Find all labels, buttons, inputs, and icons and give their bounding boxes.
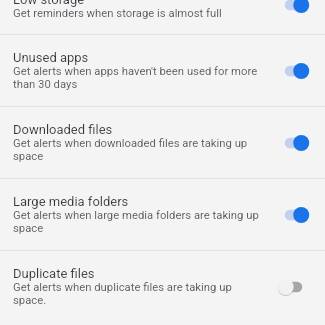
staticText: Get alerts when apps haven't been used f… (13, 65, 260, 91)
button[interactable]: Large media folders (0, 179, 325, 250)
button[interactable]: Unused apps (0, 35, 325, 106)
button[interactable]: Low storage (0, 0, 325, 33)
button[interactable]: Turn off (281, 59, 311, 83)
staticText: Duplicate files (13, 266, 95, 281)
button[interactable]: Turn off (281, 0, 311, 17)
staticText: Low storage (13, 0, 85, 7)
button[interactable]: Downloaded files (0, 107, 325, 178)
staticText: Get reminders when storage is almost ful… (13, 7, 222, 20)
staticText: Get alerts when large media folders are … (13, 209, 260, 235)
button[interactable]: Turn off (281, 203, 311, 227)
staticText: Large media folders (13, 194, 129, 209)
button[interactable]: Turn off (281, 131, 311, 155)
staticText: Unused apps (13, 50, 89, 65)
staticText: Get alerts when downloaded files are tak… (13, 137, 260, 163)
staticText: Downloaded files (13, 122, 113, 137)
button[interactable]: Turn on (281, 276, 311, 300)
staticText: Get alerts when duplicate files are taki… (13, 281, 260, 307)
button[interactable]: Duplicate files (0, 251, 325, 325)
